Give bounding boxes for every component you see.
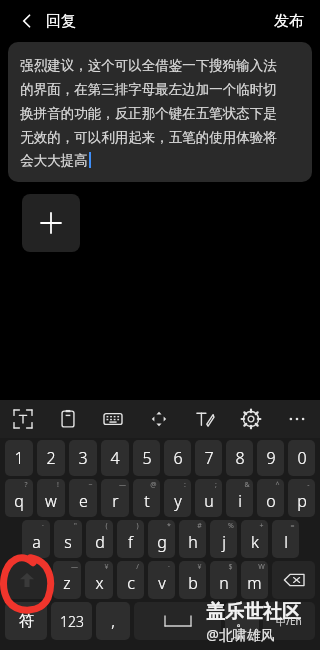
staticText: ; xyxy=(215,480,217,490)
staticText: ! xyxy=(57,480,59,490)
button[interactable]: · xyxy=(22,520,50,558)
button[interactable]: 强烈建议，这个可以全借鉴一下搜狗输入法 xyxy=(8,42,312,182)
button[interactable]: / xyxy=(117,561,144,599)
staticText: ~ xyxy=(88,480,93,490)
staticText: 符 xyxy=(19,612,34,631)
button[interactable]: 8 xyxy=(226,440,253,476)
staticText: l xyxy=(284,531,288,553)
button[interactable]: — xyxy=(53,561,81,599)
button[interactable]: 3 xyxy=(69,440,97,476)
button[interactable]: ^ xyxy=(257,479,284,517)
staticText: 3 xyxy=(78,447,88,469)
staticText: 发布 xyxy=(274,12,304,31)
staticText: 123 xyxy=(60,612,84,631)
staticText: 1 xyxy=(14,447,24,469)
button[interactable]: Cursor move xyxy=(136,400,182,438)
staticText: 盖乐世社区 xyxy=(206,600,301,624)
staticText: — xyxy=(71,562,78,572)
button[interactable]: % xyxy=(210,520,237,558)
button[interactable]: Backspace xyxy=(272,561,315,599)
staticText: 6 xyxy=(173,447,183,469)
button[interactable]: 123 xyxy=(51,602,92,640)
button[interactable]: Back xyxy=(12,6,42,36)
button[interactable]: 回复 xyxy=(46,12,76,31)
button[interactable]: - xyxy=(288,479,315,517)
button[interactable]: 。 xyxy=(225,602,259,640)
staticText: 0 xyxy=(297,447,307,469)
button[interactable]: ! xyxy=(37,479,65,517)
staticText: o xyxy=(266,490,276,512)
staticText: ¥ xyxy=(104,562,109,572)
button[interactable]: & xyxy=(226,479,253,517)
staticText: a xyxy=(32,531,41,553)
button[interactable]: — xyxy=(101,479,129,517)
button[interactable]: 0 xyxy=(288,440,315,476)
staticText: — xyxy=(119,480,126,490)
button[interactable]: 符 xyxy=(5,602,47,640)
staticText: $ xyxy=(228,562,233,572)
staticText: t xyxy=(144,490,150,512)
button[interactable]: ( xyxy=(86,520,113,558)
button[interactable]: 4 xyxy=(101,440,129,476)
button[interactable]: $ xyxy=(210,561,237,599)
staticText: ) xyxy=(136,521,139,531)
staticText: s xyxy=(64,531,72,553)
button[interactable]: 6 xyxy=(164,440,191,476)
button[interactable]: Shift xyxy=(5,561,49,599)
button[interactable]: ; xyxy=(195,479,222,517)
staticText: · xyxy=(168,562,170,572)
button[interactable]: ) xyxy=(117,520,144,558)
button[interactable]: # xyxy=(179,520,206,558)
staticText: ¥ xyxy=(197,562,202,572)
button[interactable]: = xyxy=(272,520,299,558)
staticText: - xyxy=(307,480,310,490)
button[interactable]: ¥ xyxy=(85,561,113,599)
staticText: 9 xyxy=(266,447,276,469)
button[interactable]: 9 xyxy=(257,440,284,476)
button[interactable]: Clipboard xyxy=(45,400,90,438)
button[interactable]: · xyxy=(148,561,175,599)
staticText: q xyxy=(14,490,24,512)
staticText: 8 xyxy=(235,447,245,469)
button[interactable]: 2 xyxy=(37,440,65,476)
button[interactable]: Text scan xyxy=(0,400,45,438)
staticText: i xyxy=(238,490,242,512)
staticText: / xyxy=(136,562,139,572)
button[interactable]: * xyxy=(148,520,175,558)
button[interactable]: , xyxy=(96,602,130,640)
staticText: k xyxy=(251,531,259,553)
button[interactable]: + xyxy=(241,520,268,558)
staticText: : xyxy=(184,480,186,490)
button[interactable]: Add image xyxy=(22,194,80,252)
staticText: 5 xyxy=(142,447,152,469)
staticText: w xyxy=(45,490,57,512)
button[interactable]: Settings xyxy=(228,400,274,438)
staticText: 4 xyxy=(110,447,120,469)
button[interactable]: @ xyxy=(133,479,160,517)
staticText: y xyxy=(174,490,182,512)
staticText: ^ xyxy=(275,480,280,490)
staticText: = xyxy=(290,521,295,531)
button[interactable]: ~ xyxy=(69,479,97,517)
button[interactable]: ¥ xyxy=(179,561,206,599)
button[interactable]: 5 xyxy=(133,440,160,476)
staticText: x xyxy=(95,572,104,594)
button[interactable]: Space xyxy=(134,602,221,640)
button[interactable]: 1 xyxy=(5,440,33,476)
button[interactable]: 发布 xyxy=(270,6,308,37)
button[interactable]: Language xyxy=(263,602,315,640)
staticText: 。 xyxy=(236,613,249,629)
staticText: @北啸雄风 xyxy=(206,625,275,644)
staticText: p xyxy=(297,490,307,512)
button[interactable]: 7 xyxy=(195,440,222,476)
button[interactable]: " xyxy=(54,520,82,558)
button[interactable]: ? xyxy=(5,479,33,517)
button[interactable]: W xyxy=(241,561,268,599)
button[interactable]: Keyboard xyxy=(90,400,136,438)
staticText: m xyxy=(247,572,262,594)
staticText: n xyxy=(219,572,229,594)
button[interactable]: : xyxy=(164,479,191,517)
staticText: , xyxy=(111,610,115,632)
button[interactable]: Handwriting xyxy=(182,400,228,438)
button[interactable]: More xyxy=(274,400,320,438)
